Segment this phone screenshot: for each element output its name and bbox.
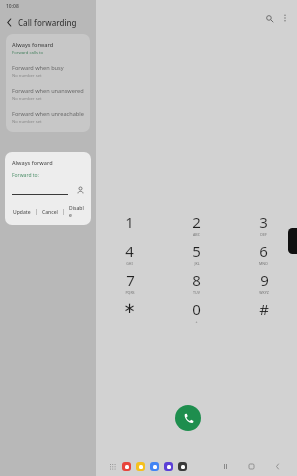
staticText: JKL: [194, 261, 200, 266]
staticText: No number set: [12, 73, 42, 79]
button[interactable]: Search: [262, 11, 276, 25]
button[interactable]: Forward when busy: [6, 60, 90, 83]
button[interactable]: All apps: [106, 460, 118, 472]
button[interactable]: ∗: [96, 299, 163, 328]
staticText: Always forward: [12, 41, 54, 49]
staticText: MNO: [259, 261, 268, 266]
staticText: Update: [13, 209, 31, 216]
button[interactable]: App 1: [135, 461, 146, 472]
staticText: PQRS: [125, 290, 135, 295]
staticText: Call forwarding: [18, 17, 77, 28]
button[interactable]: Back: [269, 458, 285, 474]
staticText: Forward when busy: [12, 64, 64, 72]
staticText: Forward calls to: [12, 50, 44, 56]
button[interactable]: 7: [96, 270, 163, 299]
button[interactable]: Call: [175, 405, 201, 431]
staticText: 1: [125, 212, 134, 232]
staticText: Forward to:: [12, 172, 39, 179]
button[interactable]: 1: [96, 212, 163, 241]
staticText: ∗: [123, 299, 136, 316]
staticText: 0: [192, 299, 201, 319]
staticText: 2: [192, 212, 201, 232]
button[interactable]: Cancel: [41, 208, 59, 217]
button[interactable]: App 2: [149, 461, 160, 472]
staticText: 10:08: [6, 3, 19, 10]
button[interactable]: 9: [230, 270, 297, 299]
staticText: Forward when unanswered: [12, 87, 84, 95]
button[interactable]: Back: [0, 13, 18, 31]
staticText: 7: [126, 270, 135, 290]
button[interactable]: 3: [230, 212, 297, 241]
button[interactable]: 0: [163, 299, 230, 328]
staticText: ABC: [193, 232, 200, 237]
button[interactable]: 6: [230, 241, 297, 270]
staticText: 6: [259, 241, 268, 261]
staticText: Cancel: [42, 209, 58, 216]
button[interactable]: Home: [243, 458, 259, 474]
staticText: No number set: [12, 96, 42, 102]
button[interactable]: 2: [163, 212, 230, 241]
staticText: Forward when unreachable: [12, 110, 84, 118]
staticText: TUV: [193, 290, 200, 295]
staticText: No number set: [12, 119, 42, 125]
staticText: #: [259, 299, 269, 319]
button[interactable]: Update: [12, 208, 32, 217]
staticText: DEF: [260, 232, 267, 237]
staticText: 9: [260, 270, 269, 290]
button[interactable]: 4: [96, 241, 163, 270]
staticText: Always forward: [12, 159, 53, 166]
staticText: WXYZ: [259, 290, 269, 295]
button[interactable]: 5: [163, 241, 230, 270]
button[interactable]: More options: [278, 11, 292, 25]
staticText: 4: [125, 241, 134, 261]
staticText: 5: [192, 241, 201, 261]
button[interactable]: 8: [163, 270, 230, 299]
button[interactable]: App 3: [163, 461, 174, 472]
button[interactable]: App 0: [121, 461, 132, 472]
button[interactable]: Always forward: [6, 37, 90, 60]
staticText: +: [195, 319, 198, 324]
staticText: Disable: [69, 205, 85, 219]
button[interactable]: Recents: [217, 458, 233, 474]
button[interactable]: Disable: [68, 204, 86, 220]
button[interactable]: #: [230, 299, 297, 328]
button[interactable]: Forward when unreachable: [6, 106, 90, 129]
staticText: 8: [192, 270, 201, 290]
button[interactable]: Forward when unanswered: [6, 83, 90, 106]
button[interactable]: Choose contact: [76, 186, 85, 195]
button[interactable]: App 4: [177, 461, 188, 472]
staticText: GHI: [126, 261, 133, 266]
staticText: 3: [259, 212, 268, 232]
